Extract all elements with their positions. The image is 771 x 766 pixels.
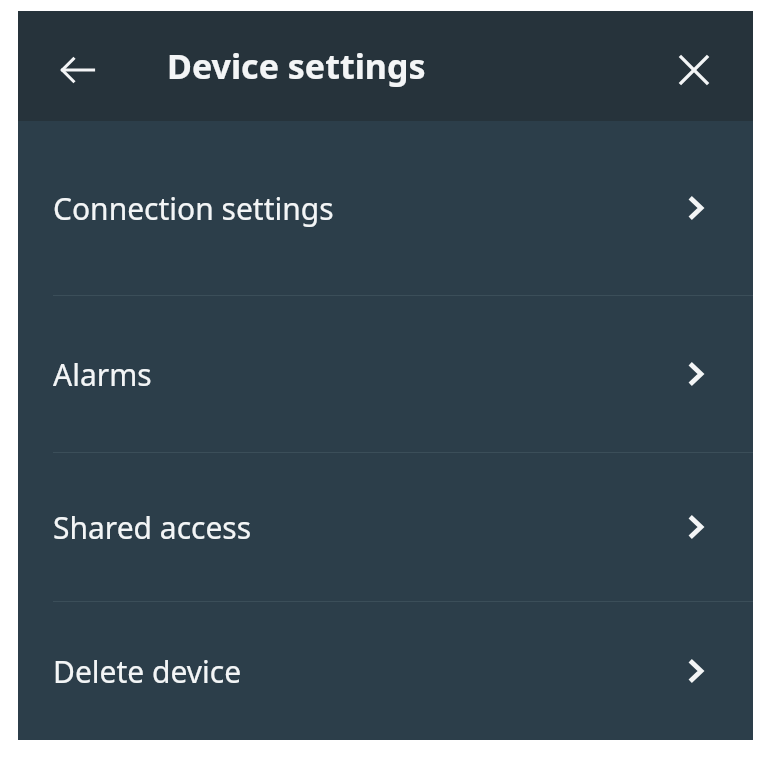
button[interactable]: Connection settings	[18, 121, 753, 295]
button[interactable]: Alarms	[18, 296, 753, 452]
staticText: Shared access	[53, 507, 252, 548]
staticText: Delete device	[53, 651, 242, 692]
staticText: Connection settings	[53, 188, 334, 229]
button[interactable]: Back	[49, 42, 105, 98]
button[interactable]: Delete device	[18, 602, 753, 740]
staticText: Device settings	[167, 43, 426, 89]
staticText: Alarms	[53, 354, 152, 395]
button[interactable]: Shared access	[18, 453, 753, 601]
button[interactable]: Close	[666, 42, 722, 98]
